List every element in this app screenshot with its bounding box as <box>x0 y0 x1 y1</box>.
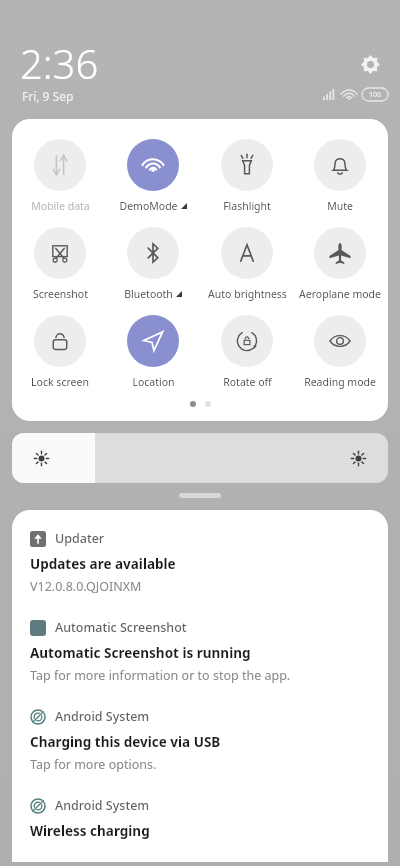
staticText: Automatic Screenshot <box>55 619 187 636</box>
staticText: Reading mode <box>304 375 376 389</box>
staticText: Automatic Screenshot is running <box>30 644 251 662</box>
staticText: Android System <box>55 797 150 814</box>
button[interactable]: Mute <box>295 135 385 217</box>
staticText: Auto brightness <box>208 287 287 301</box>
staticText: Tap for more information or to stop the … <box>30 667 291 684</box>
staticText: Wireless charging <box>30 822 150 840</box>
staticText: Fri, 9 Sep <box>22 88 74 104</box>
staticText: 100 <box>369 90 382 100</box>
staticText: Aeroplane mode <box>299 287 381 301</box>
button[interactable]: Screenshot <box>15 223 105 305</box>
button[interactable]: Rotate off <box>202 311 292 393</box>
button[interactable]: Updater <box>12 528 388 617</box>
button[interactable]: Brightness <box>12 433 388 483</box>
staticText: Rotate off <box>223 375 272 389</box>
button[interactable]: DemoMode <box>108 135 198 217</box>
staticText: Charging this device via USB <box>30 733 221 751</box>
button[interactable]: Bluetooth <box>108 223 198 305</box>
button[interactable]: Android System <box>12 706 388 795</box>
staticText: DemoMode <box>119 199 178 213</box>
staticText: Flashlight <box>223 199 271 213</box>
staticText: Android System <box>55 708 150 725</box>
button[interactable]: Mobile data <box>15 135 105 217</box>
button[interactable]: Settings <box>354 48 386 80</box>
staticText: Screenshot <box>33 287 88 301</box>
button[interactable]: Reading mode <box>295 311 385 393</box>
staticText: Tap for more options. <box>30 756 157 773</box>
button[interactable]: Location <box>108 311 198 393</box>
staticText: Mobile data <box>31 199 90 213</box>
button[interactable]: Lock screen <box>15 311 105 393</box>
staticText: Mute <box>327 199 353 213</box>
button[interactable]: Automatic Screenshot <box>12 617 388 706</box>
staticText: Updates are available <box>30 555 176 573</box>
staticText: Location <box>132 375 175 389</box>
button[interactable]: Aeroplane mode <box>295 223 385 305</box>
staticText: Bluetooth <box>124 287 173 301</box>
staticText: Lock screen <box>31 375 89 389</box>
staticText: V12.0.8.0.QJOINXM <box>30 578 142 595</box>
staticText: Updater <box>55 530 105 547</box>
staticText: 2:36 <box>20 36 99 90</box>
button[interactable]: Android System <box>12 795 388 862</box>
button[interactable]: Flashlight <box>202 135 292 217</box>
button[interactable]: Auto brightness <box>202 223 292 305</box>
